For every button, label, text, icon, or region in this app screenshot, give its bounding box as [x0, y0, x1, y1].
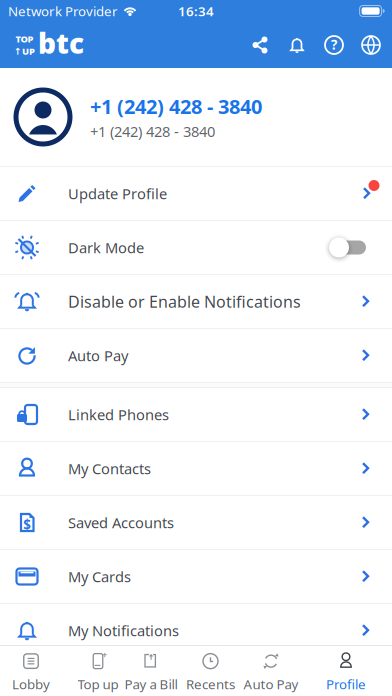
button[interactable]: Dark Mode	[326, 235, 366, 259]
button[interactable]: Auto Pay	[238, 646, 304, 696]
button[interactable]: Pay a Bill	[118, 646, 184, 696]
staticText: Saved Accounts	[68, 513, 174, 532]
button[interactable]: Auto Pay	[0, 329, 392, 383]
button[interactable]: Share	[249, 34, 271, 56]
staticText: TOP	[15, 33, 33, 45]
button[interactable]: Language	[360, 34, 382, 56]
staticText: My Cards	[68, 567, 131, 586]
staticText: Auto Pay	[68, 346, 128, 365]
button[interactable]: Recents	[178, 646, 243, 696]
staticText: My Contacts	[68, 459, 151, 478]
staticText: ?	[331, 36, 337, 53]
button[interactable]: Lobby	[0, 646, 64, 696]
staticText: 16:34	[178, 2, 214, 20]
staticText: +1 (242) 428 - 3840	[90, 93, 262, 120]
staticText: Top up	[77, 675, 118, 693]
button[interactable]: Disable or Enable Notifications	[0, 275, 392, 329]
staticText: Linked Phones	[68, 405, 169, 424]
staticText: Update Profile	[68, 184, 167, 203]
staticText: Dark Mode	[68, 238, 144, 257]
button[interactable]: Help	[323, 34, 345, 56]
staticText: My Notifications	[68, 621, 179, 640]
staticText: +1 (242) 428 - 3840	[90, 121, 215, 141]
staticText: Disable or Enable Notifications	[68, 291, 301, 312]
staticText: btc	[38, 24, 84, 62]
button[interactable]: +1 (242) 428 - 3840	[0, 68, 392, 166]
staticText: Recents	[186, 675, 235, 693]
staticText: Auto Pay	[243, 675, 298, 693]
staticText: +	[102, 648, 107, 661]
staticText: Network Provider	[8, 2, 118, 20]
button[interactable]: Update Profile	[0, 167, 392, 221]
button[interactable]: Dark Mode	[0, 221, 392, 275]
button[interactable]: Profile	[313, 646, 379, 696]
button[interactable]: Linked Phones	[0, 388, 392, 442]
button[interactable]: +	[65, 646, 131, 696]
button[interactable]: $	[0, 496, 392, 550]
button[interactable]: My Cards	[0, 550, 392, 604]
staticText: $	[23, 515, 31, 533]
staticText: Pay a Bill	[124, 675, 177, 693]
staticText: ↑UP	[14, 45, 35, 57]
staticText: Lobby	[12, 675, 50, 693]
button[interactable]: My Contacts	[0, 442, 392, 496]
button[interactable]: Notifications	[286, 34, 308, 56]
button[interactable]: My Notifications	[0, 604, 392, 658]
staticText: Profile	[326, 675, 366, 693]
